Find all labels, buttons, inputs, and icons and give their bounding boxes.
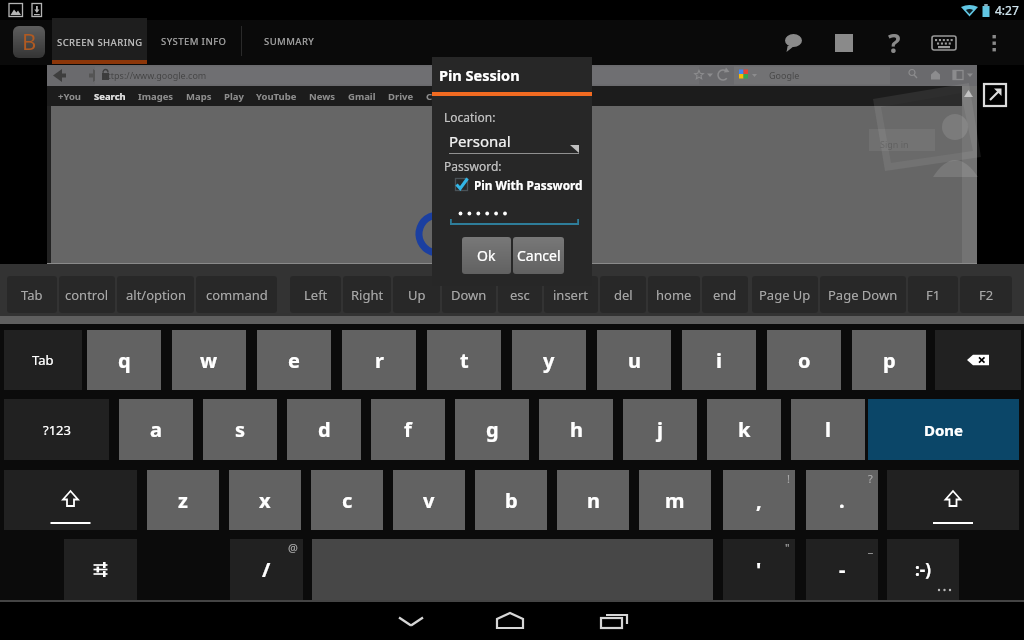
button[interactable]: More options [969, 20, 1019, 65]
staticText: Tab [21, 286, 43, 304]
button[interactable]: k [707, 399, 781, 460]
staticText: b [505, 487, 518, 514]
staticText: z [178, 487, 188, 514]
button[interactable]: Page Down [820, 276, 906, 313]
staticText: ? [868, 471, 873, 486]
button[interactable]: alt/option [117, 276, 194, 313]
button[interactable]: r [342, 330, 416, 390]
staticText: _ [868, 540, 873, 555]
button[interactable]: j [623, 399, 697, 460]
staticText: s [235, 416, 246, 443]
button[interactable]: b [475, 470, 547, 530]
button[interactable]: , [723, 470, 795, 530]
button[interactable]: u [597, 330, 671, 390]
staticText: y [543, 347, 555, 374]
staticText: Ok [477, 246, 496, 265]
button[interactable]: a [119, 399, 193, 460]
button[interactable]: o [767, 330, 841, 390]
button[interactable]: Up [393, 276, 440, 313]
staticText: m [665, 487, 685, 514]
button[interactable]: Tab [7, 276, 57, 313]
button[interactable]: i [682, 330, 756, 390]
button[interactable]: f [371, 399, 445, 460]
button[interactable]: Stop sharing [819, 20, 869, 65]
button[interactable]: . [806, 470, 878, 530]
button[interactable]: esc [498, 276, 542, 313]
staticText: Calendar [426, 90, 469, 103]
button[interactable]: Input settings [64, 539, 137, 600]
button[interactable]: Home [482, 602, 542, 640]
staticText: ' [756, 556, 762, 583]
button[interactable]: control [59, 276, 115, 313]
button[interactable]: v [393, 470, 465, 530]
button[interactable]: Page Up [752, 276, 818, 313]
button[interactable]: h [539, 399, 613, 460]
staticText: Password: [444, 158, 502, 174]
button[interactable]: Keyboard [919, 20, 969, 65]
button[interactable]: Right [343, 276, 391, 313]
button[interactable]: Ok [462, 237, 511, 274]
staticText: control [65, 286, 109, 304]
button[interactable]: Recent apps [585, 602, 645, 640]
button[interactable]: e [257, 330, 331, 390]
staticText: Right [351, 286, 384, 304]
button[interactable]: Shift [4, 470, 137, 530]
staticText: , [756, 487, 762, 514]
button[interactable]: p [852, 330, 926, 390]
button[interactable]: Left [290, 276, 341, 313]
button[interactable]: SUMMARY [250, 18, 328, 58]
button[interactable]: ?123 [4, 399, 109, 460]
button[interactable]: w [172, 330, 246, 390]
button[interactable]: Hide keyboard [381, 602, 441, 640]
button[interactable]: end [702, 276, 748, 313]
staticText: :-) [915, 558, 931, 581]
button[interactable]: d [287, 399, 361, 460]
button[interactable]: z [147, 470, 219, 530]
button[interactable]: Emoticons [887, 539, 959, 600]
staticText: v [423, 487, 435, 514]
button[interactable]: Backspace [935, 330, 1021, 390]
button[interactable]: t [427, 330, 501, 390]
staticText: ! [787, 471, 790, 486]
staticText: Pin Session [439, 65, 520, 85]
button[interactable]: App home [13, 26, 45, 58]
button[interactable]: y [512, 330, 586, 390]
staticText: 4:27 [995, 2, 1019, 18]
button[interactable]: home [648, 276, 700, 313]
button[interactable]: n [557, 470, 629, 530]
staticText: Google [769, 69, 800, 81]
button[interactable]: q [87, 330, 161, 390]
button[interactable]: x [229, 470, 301, 530]
button[interactable]: F1 [908, 276, 958, 313]
button[interactable]: m [639, 470, 711, 530]
button[interactable]: Pin With Password [455, 177, 583, 191]
button[interactable]: Tab [4, 330, 82, 390]
button[interactable]: s [203, 399, 277, 460]
staticText: alt/option [126, 286, 186, 304]
button[interactable]: g [455, 399, 529, 460]
button[interactable]: l [791, 399, 865, 460]
staticText: c [342, 487, 353, 514]
button[interactable]: Down [442, 276, 496, 313]
button[interactable]: / [230, 539, 303, 600]
button[interactable]: Done [868, 399, 1019, 460]
button[interactable]: del [600, 276, 646, 313]
button[interactable]: Help [869, 20, 919, 65]
staticText: SCREEN SHARING [57, 36, 143, 49]
button[interactable]: Cancel [513, 237, 564, 274]
staticText: @ [288, 540, 298, 555]
button[interactable]: SCREEN SHARING [52, 18, 147, 60]
staticText: - [839, 556, 846, 583]
button[interactable]: - [806, 539, 878, 600]
button[interactable]: c [311, 470, 383, 530]
button[interactable]: Chat [769, 20, 819, 65]
button[interactable]: ' [723, 539, 795, 600]
staticText: Page Down [828, 286, 898, 304]
button[interactable]: Shift [887, 470, 1019, 530]
button[interactable]: F2 [960, 276, 1012, 313]
button[interactable]: insert [544, 276, 598, 313]
button[interactable]: command [196, 276, 277, 313]
button[interactable]: SYSTEM INFO [155, 18, 233, 58]
button[interactable]: Expand to full screen [981, 81, 1009, 109]
